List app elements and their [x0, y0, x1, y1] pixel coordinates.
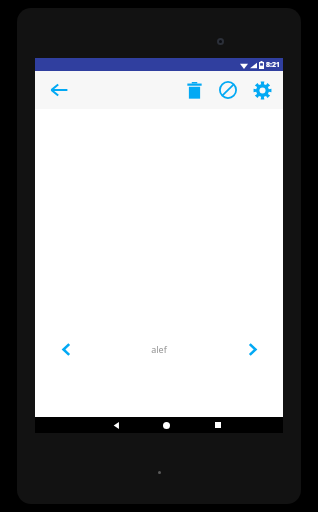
button[interactable]: Home: [141, 417, 192, 433]
button[interactable]: Back: [91, 417, 141, 433]
button[interactable]: Delete: [177, 73, 211, 107]
button[interactable]: Block: [211, 73, 245, 107]
button[interactable]: alef: [79, 343, 239, 355]
button[interactable]: Next: [239, 336, 265, 362]
staticText: 8:21: [266, 60, 280, 70]
button[interactable]: Previous: [53, 336, 79, 362]
button[interactable]: Settings: [245, 73, 279, 107]
staticText: alef: [151, 343, 167, 355]
button[interactable]: Recent apps: [192, 417, 243, 433]
button[interactable]: Back: [43, 74, 75, 106]
